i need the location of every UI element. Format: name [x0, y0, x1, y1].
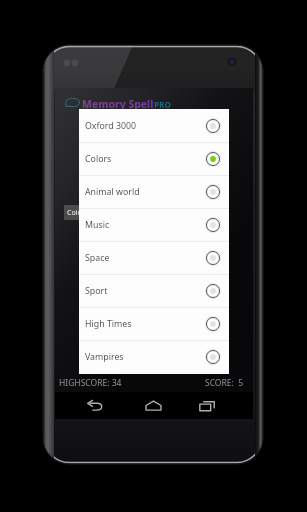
button[interactable]: Colors [64, 205, 104, 220]
button[interactable]: Oxford 3000 [79, 109, 229, 142]
button[interactable]: Colors [79, 143, 229, 175]
staticText: Space [85, 252, 110, 264]
button[interactable]: Music [79, 209, 229, 241]
staticText: Colors [67, 208, 88, 218]
staticText: High Times [85, 318, 132, 330]
button[interactable]: Vampires [79, 341, 229, 373]
staticText: Colors [85, 153, 112, 165]
staticText: Animal world [85, 186, 140, 198]
staticText: Memory Spell [82, 97, 154, 111]
button[interactable]: High Times [79, 308, 229, 340]
staticText: Vampires [85, 351, 124, 363]
button[interactable]: Recent apps [192, 395, 222, 416]
button[interactable]: Back [79, 395, 109, 416]
button[interactable]: Animal world [79, 176, 229, 208]
staticText: PRO [154, 99, 171, 110]
staticText: HIGHSCORE: 34 [59, 377, 122, 389]
staticText: Sport [85, 285, 108, 297]
staticText: SCORE: 5 [205, 377, 244, 389]
staticText: Music [85, 219, 110, 231]
staticText: Oxford 3000 [85, 120, 137, 132]
button[interactable]: Home [138, 395, 168, 416]
button[interactable]: Space [79, 242, 229, 274]
button[interactable]: Sport [79, 275, 229, 307]
